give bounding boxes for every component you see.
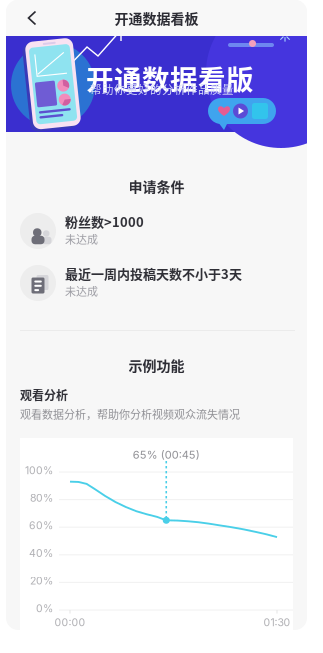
staticText: 观看数据分析，帮助你分析视频观众流失情况 (20, 406, 240, 422)
staticText: 未达成 (65, 283, 98, 299)
staticText: 60% (29, 519, 53, 532)
staticText: 粉丝数>1000 (65, 212, 144, 231)
staticText: 0% (36, 602, 53, 615)
button[interactable]: Back (12, 0, 52, 36)
button[interactable]: 最近一周内投稿天数不小于3天 (6, 257, 307, 309)
staticText: 观看分析 (20, 386, 68, 403)
staticText: 申请条件 (128, 176, 184, 196)
staticText: 80% (30, 492, 53, 504)
staticText: 20% (30, 574, 53, 587)
staticText: 帮助你更好的分析作品质量 (90, 81, 234, 97)
staticText: 最近一周内投稿天数不小于3天 (65, 264, 242, 283)
staticText: 100% (25, 464, 53, 477)
staticText: 40% (29, 547, 53, 559)
staticText: 开通数据看板 (114, 8, 198, 28)
staticText: 65% (00:45) (133, 448, 200, 461)
button[interactable]: 粉丝数>1000 (6, 205, 307, 257)
staticText: 01:30 (263, 616, 290, 629)
staticText: 00:00 (54, 616, 85, 629)
staticText: 示例功能 (128, 355, 184, 375)
staticText: 未达成 (65, 231, 98, 247)
staticText: 开通数据看版 (86, 58, 254, 98)
